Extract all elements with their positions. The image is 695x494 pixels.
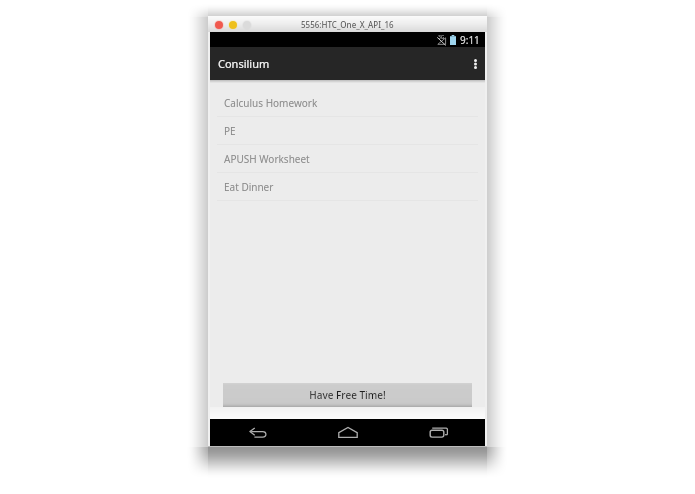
button[interactable]: PE: [210, 117, 485, 145]
staticText: 3G: [438, 34, 445, 41]
staticText: 5556:HTC_One_X_API_16: [301, 19, 394, 30]
staticText: Have Free Time!: [309, 388, 386, 402]
button[interactable]: Home: [304, 419, 391, 446]
staticText: 9:11: [460, 33, 480, 47]
button[interactable]: Calculus Homework: [210, 89, 485, 117]
button[interactable]: Back: [214, 419, 301, 446]
button[interactable]: APUSH Worksheet: [210, 145, 485, 173]
button[interactable]: Recent apps: [395, 419, 482, 446]
staticText: Eat Dinner: [224, 180, 274, 194]
button[interactable]: Have Free Time!: [223, 383, 472, 407]
staticText: Calculus Homework: [224, 96, 318, 110]
staticText: APUSH Worksheet: [224, 152, 310, 166]
staticText: Consilium: [218, 56, 270, 71]
button[interactable]: Eat Dinner: [210, 173, 485, 201]
staticText: PE: [224, 124, 236, 138]
button[interactable]: More options: [466, 47, 485, 80]
